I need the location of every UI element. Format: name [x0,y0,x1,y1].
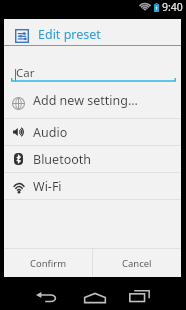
button[interactable]: Home [79,285,110,310]
button[interactable]: Bluetooth [4,146,181,172]
staticText: Bluetooth [33,151,92,168]
staticText: Edit preset [38,26,101,43]
button[interactable]: Audio [4,119,181,145]
staticText: Car [16,65,35,81]
button[interactable]: Wi-Fi [4,173,181,199]
staticText: 9:40 [162,0,183,14]
other: Bluetooth [14,153,23,165]
other: Wi-Fi [12,182,26,194]
staticText: Confirm [30,257,67,270]
button[interactable]: Cancel [93,249,181,277]
other: Add new setting [12,97,25,110]
staticText: Wi-Fi [33,178,62,195]
staticText: Cancel [122,257,152,270]
button[interactable]: Confirm [4,249,92,277]
button[interactable]: Add new setting [4,82,181,118]
other: Audio [13,128,25,136]
staticText: Audio [33,124,68,141]
button[interactable]: Back [31,284,62,309]
button[interactable]: Recents [124,283,155,308]
staticText: Add new setting... [33,92,138,109]
